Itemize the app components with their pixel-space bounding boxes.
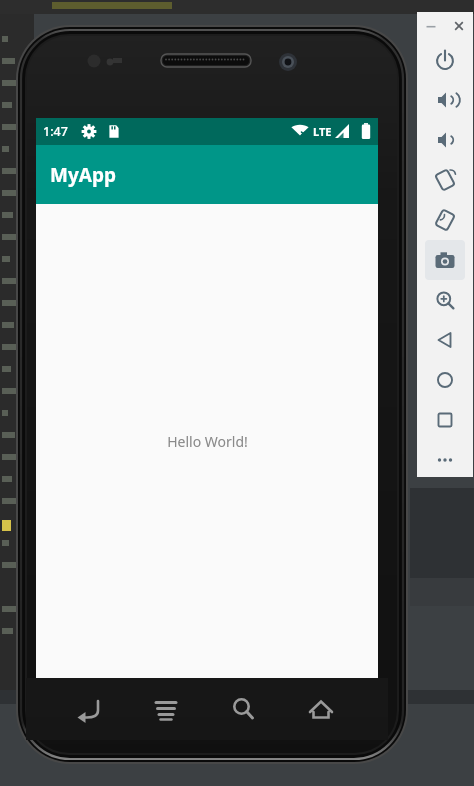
staticText: MyApp	[50, 162, 116, 188]
button[interactable]: More	[425, 440, 465, 480]
button[interactable]: Zoom	[425, 280, 465, 320]
button[interactable]: Close	[445, 12, 473, 40]
staticText: Hello World!	[167, 432, 248, 451]
button[interactable]: Search	[206, 678, 292, 740]
button[interactable]: Home	[425, 360, 465, 400]
button[interactable]: Take screenshot	[425, 240, 465, 280]
button[interactable]: Power	[425, 40, 465, 80]
button[interactable]: Back	[425, 320, 465, 360]
button[interactable]: Back	[36, 678, 121, 740]
staticText: 1:47	[43, 123, 68, 140]
button[interactable]: Rotate right	[425, 200, 465, 240]
staticText: LTE	[313, 124, 332, 139]
button[interactable]: Minimize	[417, 12, 445, 40]
button[interactable]: Volume up	[425, 80, 465, 120]
button[interactable]: MyApp	[36, 145, 378, 204]
button[interactable]: Overview	[425, 400, 465, 440]
button[interactable]: Volume down	[425, 120, 465, 160]
button[interactable]: Rotate left	[425, 160, 465, 200]
button[interactable]: Menu	[121, 678, 206, 740]
button[interactable]: Home	[292, 678, 378, 740]
